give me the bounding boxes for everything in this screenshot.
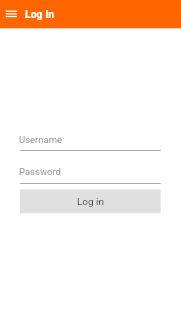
button[interactable]: Open navigation drawer <box>0 0 22 22</box>
staticText: Username <box>19 134 63 145</box>
button[interactable]: Password input field <box>20 165 161 184</box>
button[interactable]: Log in <box>20 189 161 213</box>
staticText: Password <box>19 166 61 177</box>
staticText: Log In <box>25 8 55 20</box>
staticText: Log in <box>77 196 104 208</box>
button[interactable]: Username input field <box>20 132 161 151</box>
